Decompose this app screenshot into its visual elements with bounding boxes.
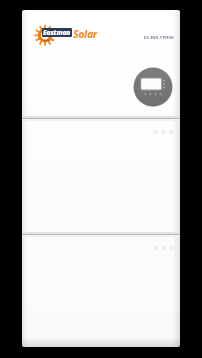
staticText: Solar — [73, 27, 97, 40]
button[interactable]: Inverter display panel — [133, 67, 173, 107]
button[interactable]: Eastman Solar logo — [34, 24, 110, 48]
staticText: ENERGY · UNLIMITED — [44, 38, 70, 42]
staticText: Eastman — [43, 28, 71, 37]
button[interactable]: Eastman Solar logo — [22, 10, 180, 347]
staticText: ES-INV-TPH5K — [143, 35, 174, 41]
